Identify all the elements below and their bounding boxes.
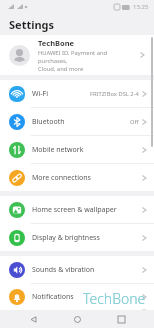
button[interactable]: Sounds & vibration [0,256,154,283]
staticText: Display & brightness [32,233,100,243]
button[interactable]: Notifications [0,284,154,310]
button[interactable]: Home screen & wallpaper [0,196,154,223]
button[interactable]: Bluetooth [0,108,154,135]
button[interactable]: Recent apps [110,310,132,328]
button[interactable]: Wi-Fi [0,80,154,107]
staticText: 15:25 [133,3,149,11]
staticText: Settings [9,17,55,32]
staticText: TechBone [83,289,146,308]
staticText: FRITZ!Box DSL 2-4 [90,90,139,98]
staticText: Wi-Fi [32,89,49,99]
button[interactable]: TechBone [0,35,154,75]
staticText: TechBone [38,38,75,48]
button[interactable]: Mobile network [0,136,154,163]
staticText: Notifications [32,292,74,302]
button[interactable]: Back [22,310,44,328]
staticText: Home screen & wallpaper [32,205,117,215]
staticText: Off [130,118,139,126]
staticText: HUAWEI ID, Payment and purchases, Cloud,… [38,49,136,73]
staticText: Bluetooth [32,117,65,127]
staticText: Sounds & vibration [32,265,95,275]
staticText: More connections [32,173,91,183]
button[interactable]: Display & brightness [0,224,154,251]
staticText: Mobile network [32,145,84,155]
button[interactable]: Home [66,310,88,328]
button[interactable]: More connections [0,164,154,191]
